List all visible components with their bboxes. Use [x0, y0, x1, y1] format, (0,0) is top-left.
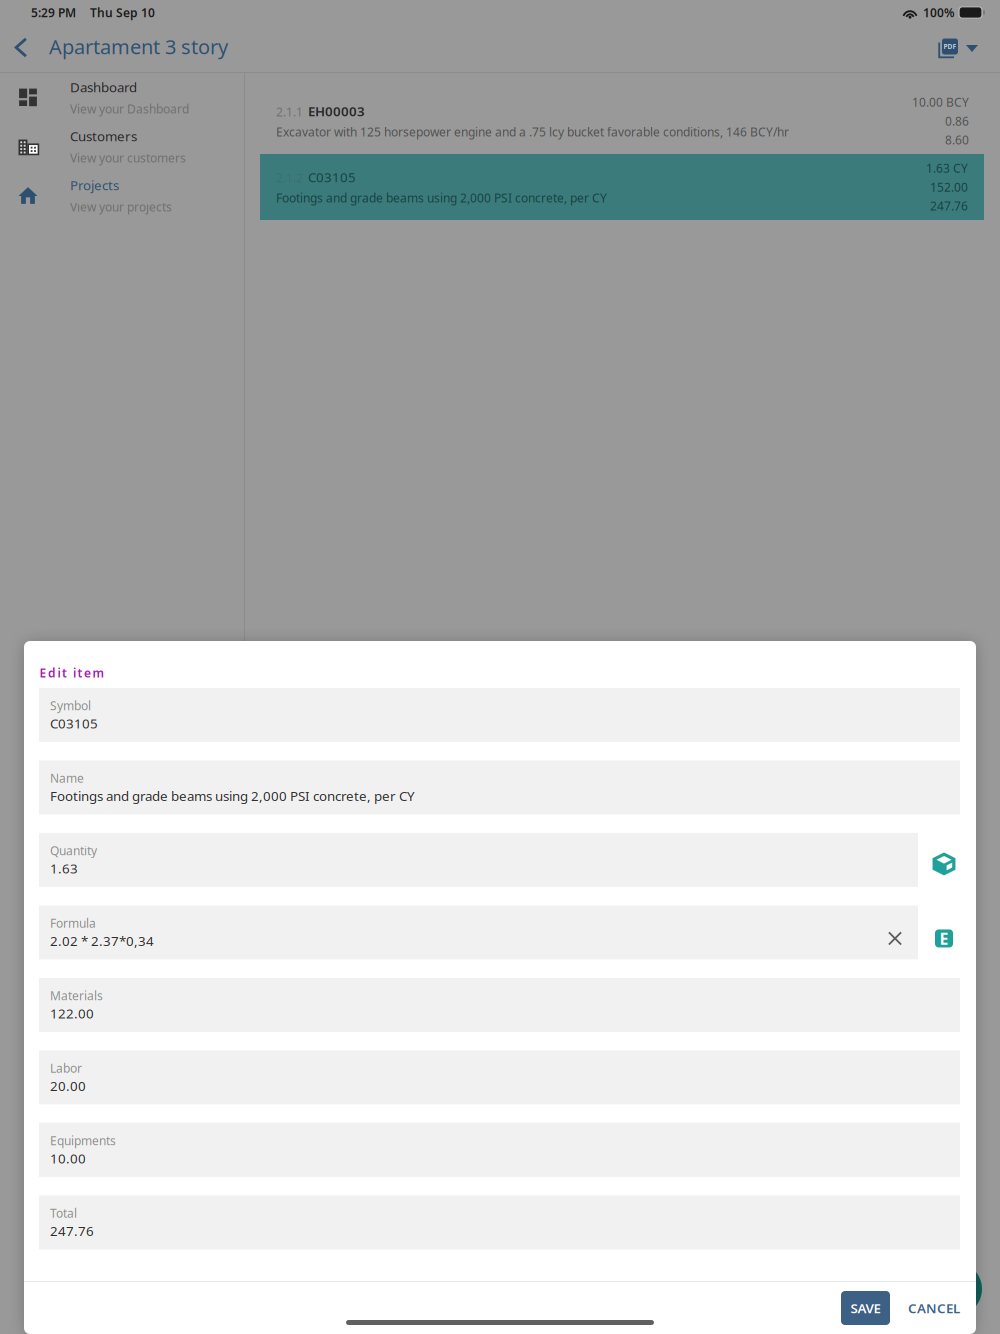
button[interactable]: Projects [0, 171, 244, 220]
staticText: C03105 [50, 715, 98, 732]
staticText: 8.60 [945, 132, 969, 148]
staticText: EH00003 [308, 102, 365, 120]
staticText: Equipments [50, 1133, 116, 1148]
staticText: Total [50, 1205, 77, 1221]
button[interactable]: Dashboard [0, 73, 244, 122]
staticText: Formula [50, 915, 96, 931]
button[interactable]: CANCEL [908, 1291, 960, 1325]
button[interactable]: Customers [0, 122, 244, 171]
staticText: PDF [943, 42, 956, 51]
staticText: CANCEL [908, 1299, 960, 1317]
staticText: Quantity [50, 843, 97, 858]
staticText: 2.02 * 2.37*0,34 [50, 932, 154, 950]
staticText: 20.00 [50, 1077, 86, 1095]
staticText: 2.1.1 [276, 104, 303, 120]
staticText: 0.86 [945, 113, 969, 129]
button[interactable]: Export PDF [934, 33, 958, 63]
staticText: 2.1.2 [276, 170, 303, 186]
staticText: Name [50, 770, 84, 786]
staticText: 122.00 [50, 1005, 94, 1022]
button[interactable]: SAVE [841, 1291, 890, 1325]
staticText: Labor [50, 1060, 82, 1076]
staticText: Excavator with 125 horsepower engine and… [276, 124, 789, 140]
staticText: Footings and grade beams using 2,000 PSI… [50, 787, 415, 805]
button[interactable]: More export options [962, 36, 982, 60]
staticText: 5:29 PM [31, 4, 76, 20]
staticText: 10.00 [50, 1150, 86, 1167]
staticText: Thu Sep 10 [90, 4, 155, 20]
staticText: 1.63 [50, 860, 78, 877]
staticText: 100% [923, 4, 955, 20]
staticText: Dashboard [70, 78, 137, 96]
staticText: Symbol [50, 698, 91, 713]
button[interactable]: Clear formula [876, 916, 908, 948]
staticText: 247.76 [50, 1222, 94, 1240]
staticText: View your Dashboard [70, 101, 189, 117]
staticText: Edit item [39, 665, 104, 681]
staticText: Projects [70, 176, 119, 194]
button[interactable]: Back [9, 33, 33, 63]
staticText: 247.76 [930, 198, 968, 214]
button[interactable]: Choose unit [929, 845, 959, 875]
staticText: Footings and grade beams using 2,000 PSI… [276, 190, 607, 206]
staticText: E [939, 928, 948, 949]
button[interactable]: 2.1.1 [245, 88, 1000, 154]
staticText: Apartament 3 story [49, 33, 228, 60]
staticText: C03105 [308, 168, 356, 186]
staticText: Customers [70, 127, 137, 145]
staticText: 10.00 BCY [912, 94, 969, 110]
staticText: 152.00 [930, 179, 968, 195]
staticText: Materials [50, 988, 103, 1003]
button[interactable]: Formula editor [929, 917, 959, 947]
button[interactable]: 2.1.2 [260, 154, 984, 220]
staticText: 1.63 CY [926, 160, 968, 176]
staticText: SAVE [850, 1299, 880, 1317]
staticText: View your projects [70, 199, 172, 215]
staticText: View your customers [70, 150, 186, 166]
